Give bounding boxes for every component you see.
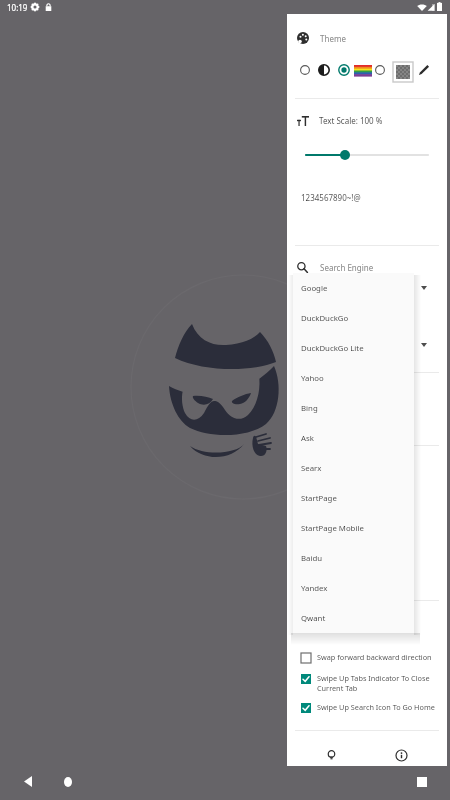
button[interactable]: Baidu: [293, 543, 414, 573]
staticText: Searx: [301, 463, 322, 474]
button[interactable]: Home: [64, 777, 72, 787]
staticText: DuckDuckGo: [301, 313, 349, 324]
button[interactable]: Dark theme: [318, 64, 330, 76]
button[interactable]: Bing: [293, 393, 414, 423]
button[interactable]: Info: [395, 749, 408, 762]
button[interactable]: Theme: [297, 28, 437, 48]
staticText: StartPage: [301, 493, 337, 504]
button[interactable]: StartPage Mobile: [293, 513, 414, 543]
button[interactable]: Search Engine: [297, 258, 437, 276]
button[interactable]: System theme: [338, 64, 350, 76]
button[interactable]: Light theme: [300, 65, 310, 75]
button[interactable]: Edit colour: [418, 64, 430, 76]
button[interactable]: Ask: [293, 423, 414, 453]
button[interactable]: Yandex: [293, 573, 414, 603]
button[interactable]: 1234567890~!@: [301, 192, 361, 203]
button[interactable]: Swipe Up Tabs Indicator To Close Current…: [301, 673, 441, 693]
staticText: Swipe Up Search Icon To Go Home: [317, 702, 435, 712]
button[interactable]: Yahoo: [293, 363, 414, 393]
button[interactable]: Swipe Up Search Icon To Go Home: [301, 702, 441, 712]
staticText: Swap forward backward direction: [317, 652, 432, 662]
staticText: Search Engine: [320, 262, 374, 273]
staticText: DuckDuckGo Lite: [301, 343, 364, 354]
button[interactable]: Google: [293, 273, 414, 303]
staticText: Qwant: [301, 613, 326, 624]
button[interactable]: Searx: [293, 453, 414, 483]
button[interactable]: Custom theme: [375, 65, 385, 75]
button[interactable]: Rainbow theme: [354, 65, 372, 76]
staticText: Text Scale: 100 %: [319, 115, 383, 126]
button[interactable]: DuckDuckGo Lite: [293, 333, 414, 363]
staticText: Ask: [301, 433, 314, 444]
staticText: Baidu: [301, 553, 323, 564]
button[interactable]: Back: [24, 776, 32, 787]
staticText: Swipe Up Tabs Indicator To Close Current…: [317, 673, 441, 693]
staticText: Google: [301, 283, 328, 294]
button[interactable]: Transparent colour: [393, 62, 413, 82]
staticText: Yandex: [301, 583, 328, 594]
button[interactable]: Text Scale: 100 %: [297, 112, 442, 129]
button[interactable]: DuckDuckGo: [293, 303, 414, 333]
button[interactable]: StartPage: [293, 483, 414, 513]
staticText: Bing: [301, 403, 318, 414]
staticText: Yahoo: [301, 373, 324, 384]
staticText: StartPage Mobile: [301, 523, 364, 534]
staticText: 10:19: [7, 2, 28, 13]
button[interactable]: Swap forward backward direction: [301, 652, 441, 662]
staticText: Theme: [320, 33, 346, 44]
button[interactable]: Qwant: [293, 603, 414, 633]
button[interactable]: Tips: [325, 749, 338, 762]
